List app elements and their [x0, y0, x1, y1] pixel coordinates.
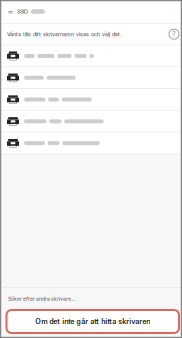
staticText: ?: [172, 30, 176, 38]
button[interactable]: Om det inte går att hitta skrivaren: [6, 310, 179, 333]
button[interactable]: [0, 133, 182, 154]
button[interactable]: [0, 111, 182, 133]
button[interactable]: [0, 89, 182, 111]
button[interactable]: [0, 45, 182, 67]
button[interactable]: Hjälp: [169, 29, 179, 39]
staticText: Om det inte går att hitta skrivaren: [35, 317, 150, 326]
staticText: SSID: [17, 8, 28, 15]
button[interactable]: [0, 67, 182, 89]
staticText: Vänta tills ditt skrivarnamn visas och v…: [7, 31, 122, 37]
staticText: Söker efter andra skrivare…: [8, 296, 75, 302]
